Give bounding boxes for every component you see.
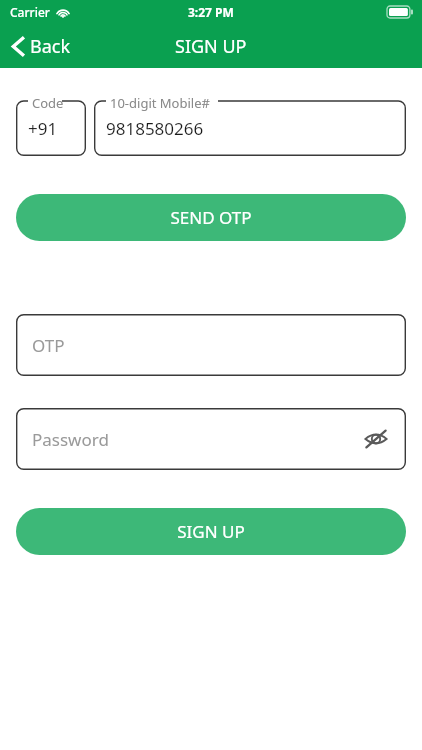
- staticText: Carrier: [10, 4, 50, 20]
- button[interactable]: Show password: [358, 421, 394, 457]
- staticText: SEND OTP: [170, 206, 252, 229]
- button[interactable]: 10-digit Mobile#: [94, 93, 406, 156]
- button[interactable]: Password: [16, 408, 406, 470]
- staticText: SIGN UP: [175, 34, 247, 59]
- staticText: Code: [32, 94, 64, 112]
- button[interactable]: Code: [16, 93, 86, 156]
- button[interactable]: Back: [0, 24, 83, 68]
- button[interactable]: SEND OTP: [16, 194, 406, 241]
- button[interactable]: SIGN UP: [16, 508, 406, 555]
- staticText: Password: [32, 428, 109, 451]
- staticText: Back: [30, 34, 71, 59]
- staticText: 3:27 PM: [188, 4, 234, 20]
- staticText: +91: [28, 117, 58, 140]
- button[interactable]: OTP: [16, 314, 406, 376]
- staticText: 10-digit Mobile#: [110, 94, 210, 112]
- staticText: OTP: [32, 334, 65, 357]
- staticText: 9818580266: [106, 117, 204, 140]
- staticText: SIGN UP: [177, 520, 245, 543]
